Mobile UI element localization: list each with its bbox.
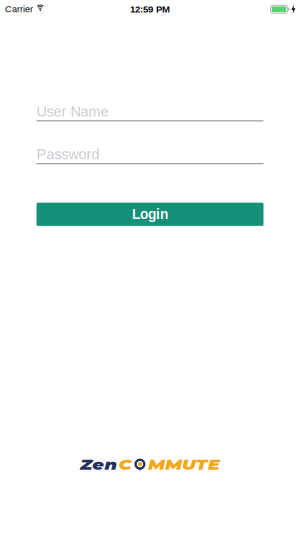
button[interactable]: Password xyxy=(36,146,263,164)
staticText: Carrier xyxy=(5,4,33,14)
staticText: Password xyxy=(36,146,99,162)
button[interactable]: Login xyxy=(36,203,263,226)
button[interactable]: User Name xyxy=(36,103,263,121)
staticText: Login xyxy=(132,207,168,222)
staticText: User Name xyxy=(36,103,108,119)
staticText: C xyxy=(124,456,135,473)
staticText: MMUTE xyxy=(148,456,207,473)
staticText: 12:59 PM xyxy=(130,4,170,14)
staticText: Zen xyxy=(93,456,123,473)
